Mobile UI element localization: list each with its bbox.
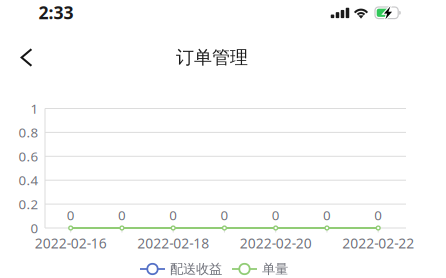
staticText: 0 (272, 206, 280, 224)
staticText: 2:33 (38, 0, 73, 24)
staticText: 单量 (262, 261, 288, 277)
staticText: 2022-02-20 (240, 234, 312, 252)
staticText: 0.4 (18, 171, 38, 189)
staticText: 订单管理 (176, 46, 248, 69)
button[interactable]: Back (4, 35, 48, 79)
staticText: 0.6 (18, 147, 38, 165)
staticText: 1 (30, 99, 38, 118)
staticText: 2022-02-22 (342, 234, 414, 252)
staticText: 2022-02-18 (137, 234, 209, 252)
staticText: 0 (169, 206, 177, 224)
staticText: 0 (118, 206, 126, 224)
staticText: 0 (30, 219, 38, 237)
staticText: 2022-02-16 (35, 234, 107, 252)
staticText: 0 (374, 206, 382, 224)
staticText: 0 (220, 206, 228, 224)
staticText: 0 (323, 206, 331, 224)
staticText: 0.8 (18, 123, 38, 141)
staticText: 配送收益 (170, 261, 222, 277)
staticText: 0.2 (18, 195, 38, 213)
staticText: 0 (67, 206, 75, 224)
